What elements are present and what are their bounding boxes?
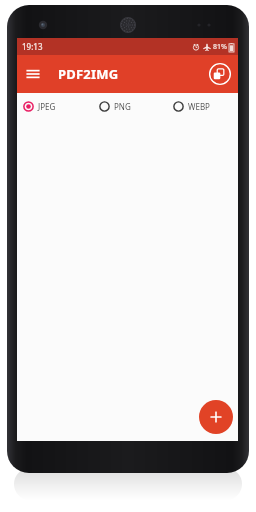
staticText: 81% — [213, 42, 227, 52]
staticText: JPEG — [38, 101, 56, 112]
button[interactable]: PNG — [90, 93, 164, 119]
button[interactable]: WEBP — [164, 93, 238, 119]
staticText: PNG — [114, 101, 131, 112]
button[interactable]: JPEG — [17, 93, 90, 119]
staticText: PDF2IMG — [58, 65, 119, 83]
button[interactable]: Open navigation menu — [20, 61, 46, 87]
button[interactable]: Select pages — [208, 62, 232, 86]
staticText: WEBP — [188, 101, 210, 112]
staticText: 19:13 — [22, 41, 43, 52]
button[interactable]: Add — [199, 400, 233, 434]
